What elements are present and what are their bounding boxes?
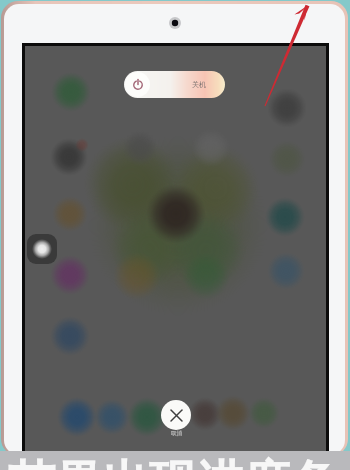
staticText: 苹果出现进度条	[8, 454, 337, 470]
staticText: 关机	[192, 80, 206, 89]
staticText: 取消	[171, 430, 182, 437]
button[interactable]: 取消	[161, 400, 191, 430]
button[interactable]: 关机	[124, 71, 225, 98]
button[interactable]: AssistiveTouch	[27, 234, 57, 264]
